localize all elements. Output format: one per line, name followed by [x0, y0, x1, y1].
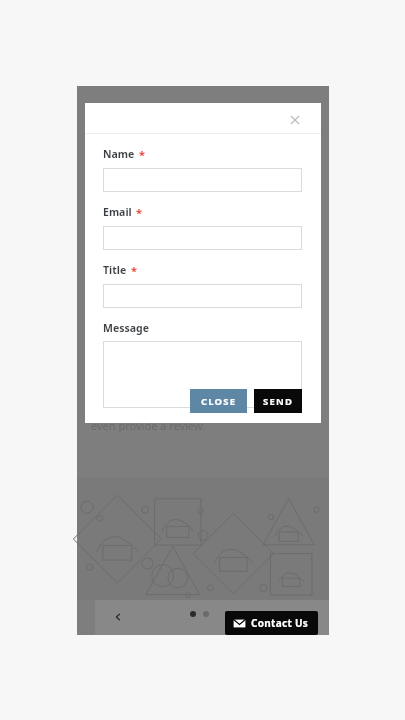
staticText: Email: [103, 205, 132, 219]
staticText: Title: [103, 263, 127, 277]
staticText: CLOSE: [201, 395, 237, 408]
staticText: Contact Us: [251, 616, 309, 630]
button[interactable]: CLOSE: [190, 389, 247, 413]
staticText: even provide a review.: [91, 418, 206, 433]
button[interactable]: [103, 226, 302, 250]
button[interactable]: Page 1: [190, 611, 196, 617]
staticText: Name: [103, 147, 135, 161]
staticText: SEND: [263, 395, 294, 408]
staticText: *: [131, 263, 137, 278]
button[interactable]: Close: [281, 106, 309, 134]
button[interactable]: SEND: [254, 389, 302, 413]
button[interactable]: Contact Us: [225, 611, 318, 635]
staticText: Message: [103, 321, 149, 335]
staticText: *: [136, 205, 142, 220]
staticText: *: [139, 147, 145, 162]
button[interactable]: Page 2: [203, 611, 209, 617]
button[interactable]: [103, 168, 302, 192]
button[interactable]: [103, 284, 302, 308]
button[interactable]: [103, 341, 302, 408]
button[interactable]: Previous: [105, 604, 131, 630]
